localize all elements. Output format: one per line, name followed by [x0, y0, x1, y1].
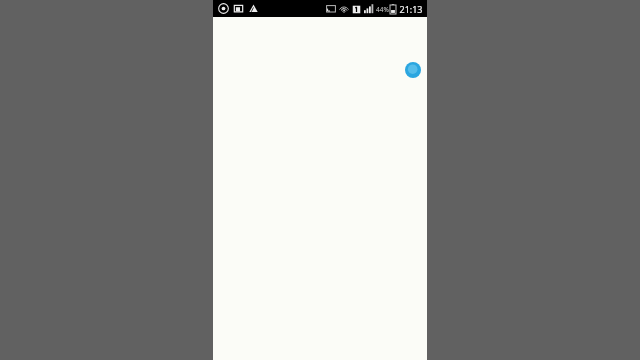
button[interactable]: Scroll indicator [405, 62, 421, 78]
staticText: 44% [376, 5, 389, 14]
staticText: 21:13 [399, 3, 423, 15]
